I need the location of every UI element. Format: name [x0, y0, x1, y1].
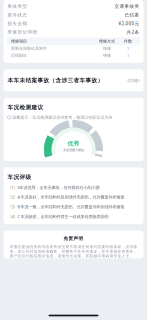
staticText: 新氧化保险杠及附件	[11, 46, 47, 51]
staticText: 共2条	[126, 29, 139, 35]
staticText: 件数	[124, 39, 132, 44]
staticText: 1	[127, 46, 129, 51]
staticText: 温馨提示：车况检测建议仅供参考，敬请以实际车况为准	[12, 115, 112, 120]
staticText: 维修项目	[11, 39, 27, 44]
staticText: 〔2〕A车况良好，全车结构件及加强件无损伤，允许覆盖件布修复	[7, 194, 124, 200]
staticText: 维修方式	[99, 39, 115, 44]
staticText: 案件状态	[7, 12, 27, 18]
staticText: 未发现重大事故	[63, 148, 84, 152]
staticText: ¥2,000元	[118, 20, 139, 27]
staticText: 车况评级	[7, 173, 31, 181]
staticText: 〔3〕B车况一般，全车结构件无损伤、允许覆盖件和加强件布修复	[7, 204, 124, 209]
staticText: 维修	[103, 46, 111, 51]
staticText: 维修	[103, 53, 111, 58]
staticText: 交通事故类	[114, 3, 139, 9]
staticText: 免责声明	[63, 236, 83, 241]
staticText: (共0条)	[127, 78, 139, 83]
staticText: 损失金额	[7, 21, 27, 26]
staticText: 已结案	[124, 12, 139, 18]
staticText: 维修部位明细	[7, 29, 37, 35]
staticText: 〔4〕C车况较差，全车结构件发生一处或多处查验类损伤	[7, 213, 108, 219]
staticText: 优秀	[67, 140, 79, 147]
staticText: 事故类型	[7, 3, 27, 9]
staticText: 〔1〕S车况优秀，全车无事故，仅外观存在小剐小蹭	[7, 185, 99, 190]
staticText: 后保险杠	[11, 53, 27, 58]
staticText: 车况检测建议	[7, 104, 43, 111]
staticText: 1	[127, 53, 129, 58]
staticText: 本车未结案事故（含涉三者车事故）	[7, 77, 103, 84]
staticText: 本报告提供的所有内容及所涉交易不构成任何形式的要约或承诺，仅供参考。本公司对信息…	[9, 244, 137, 258]
